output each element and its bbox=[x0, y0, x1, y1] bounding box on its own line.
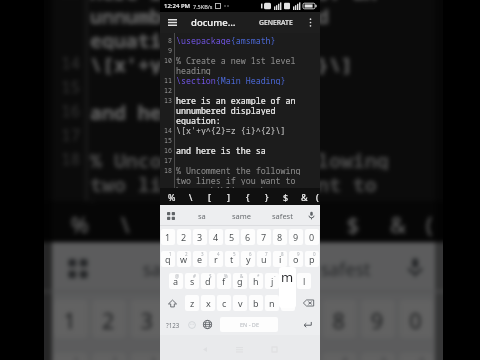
button[interactable]: same bbox=[222, 205, 262, 226]
button[interactable]: 4 bbox=[209, 229, 223, 245]
button[interactable]: Backspace bbox=[296, 292, 320, 314]
button[interactable]: t bbox=[225, 251, 239, 267]
button[interactable]: 1 bbox=[161, 229, 175, 245]
button[interactable]: ( bbox=[314, 188, 320, 205]
button[interactable]: Voice input bbox=[302, 205, 320, 226]
button[interactable]: % bbox=[56, 201, 102, 242]
button[interactable]: x bbox=[201, 295, 215, 311]
button[interactable]: & bbox=[376, 201, 421, 242]
button[interactable]: \ bbox=[102, 201, 148, 242]
button[interactable]: s bbox=[185, 273, 199, 289]
button[interactable]: EN - DE bbox=[220, 317, 278, 332]
button[interactable]: 7 bbox=[257, 229, 271, 245]
button[interactable]: w bbox=[177, 251, 191, 267]
button[interactable]: 8 bbox=[273, 229, 287, 245]
button[interactable]: 5 bbox=[208, 300, 241, 338]
button[interactable]: { bbox=[238, 188, 257, 205]
button[interactable]: v bbox=[233, 295, 247, 311]
button[interactable]: same bbox=[200, 242, 296, 293]
button[interactable]: 7 bbox=[284, 300, 318, 338]
button[interactable]: 4 bbox=[169, 300, 203, 338]
button[interactable]: 9 bbox=[361, 300, 395, 338]
button[interactable]: ] bbox=[219, 188, 238, 205]
button[interactable]: 9 bbox=[289, 229, 303, 245]
button[interactable]: j bbox=[265, 273, 279, 289]
button[interactable]: 0 bbox=[305, 229, 319, 245]
button[interactable]: & bbox=[295, 188, 314, 205]
staticText: [ bbox=[167, 209, 174, 237]
button[interactable]: a bbox=[169, 273, 183, 289]
button[interactable]: % bbox=[162, 188, 181, 205]
button[interactable]: e bbox=[131, 353, 164, 360]
button[interactable]: g bbox=[233, 273, 247, 289]
button[interactable]: q bbox=[161, 251, 175, 267]
button[interactable]: \ bbox=[181, 188, 200, 205]
button[interactable]: Change language bbox=[200, 314, 215, 335]
button[interactable]: sa bbox=[104, 242, 200, 293]
button[interactable]: p bbox=[305, 251, 319, 267]
button[interactable]: safest bbox=[296, 242, 392, 293]
staticText: v bbox=[238, 297, 243, 309]
button[interactable]: ] bbox=[193, 201, 239, 242]
button[interactable]: f bbox=[217, 273, 231, 289]
button[interactable]: y bbox=[241, 251, 255, 267]
button[interactable]: 6 bbox=[241, 229, 255, 245]
button[interactable]: 8 bbox=[323, 300, 356, 338]
button[interactable]: safest bbox=[262, 205, 302, 226]
button[interactable]: [ bbox=[200, 188, 219, 205]
button[interactable]: l bbox=[297, 273, 311, 289]
button[interactable]: 3 bbox=[131, 300, 164, 338]
button[interactable]: o bbox=[289, 251, 303, 267]
button[interactable]: Enter bbox=[296, 314, 318, 335]
button[interactable]: Voice input bbox=[392, 242, 436, 293]
button[interactable]: ?123 bbox=[162, 314, 184, 335]
button[interactable]: 2 bbox=[177, 229, 191, 245]
button[interactable]: n bbox=[265, 295, 279, 311]
button[interactable]: Toolbar bbox=[52, 242, 104, 293]
button[interactable]: 6 bbox=[246, 300, 280, 338]
button[interactable]: u bbox=[257, 251, 271, 267]
button[interactable]: $ bbox=[330, 201, 376, 242]
button[interactable]: $ bbox=[276, 188, 295, 205]
button[interactable]: c bbox=[217, 295, 231, 311]
button[interactable]: d bbox=[201, 273, 215, 289]
button[interactable]: 0 bbox=[400, 300, 433, 338]
button[interactable]: i bbox=[273, 251, 287, 267]
button[interactable]: 1 bbox=[54, 300, 88, 338]
button[interactable]: Open navigation drawer bbox=[164, 12, 180, 33]
button[interactable]: z bbox=[185, 295, 199, 311]
button[interactable]: } bbox=[257, 188, 276, 205]
button[interactable]: sa bbox=[182, 205, 222, 226]
button[interactable]: } bbox=[284, 201, 330, 242]
button[interactable]: h bbox=[249, 273, 263, 289]
button[interactable]: More options bbox=[304, 12, 317, 33]
button[interactable]: Shift bbox=[160, 292, 184, 314]
button[interactable]: { bbox=[239, 201, 284, 242]
button[interactable]: GENERATE bbox=[259, 12, 293, 33]
button[interactable]: ( bbox=[421, 201, 436, 242]
button[interactable]: Emoji bbox=[184, 314, 200, 335]
button[interactable]: e bbox=[193, 251, 207, 267]
button[interactable]: b bbox=[249, 295, 263, 311]
button[interactable]: 3 bbox=[193, 229, 207, 245]
button[interactable]: 5 bbox=[225, 229, 239, 245]
button[interactable]: Toolbar bbox=[160, 205, 182, 226]
button[interactable]: k bbox=[281, 273, 295, 289]
button[interactable]: [ bbox=[148, 201, 193, 242]
button[interactable]: 2 bbox=[92, 300, 126, 338]
button[interactable]: r bbox=[209, 251, 223, 267]
